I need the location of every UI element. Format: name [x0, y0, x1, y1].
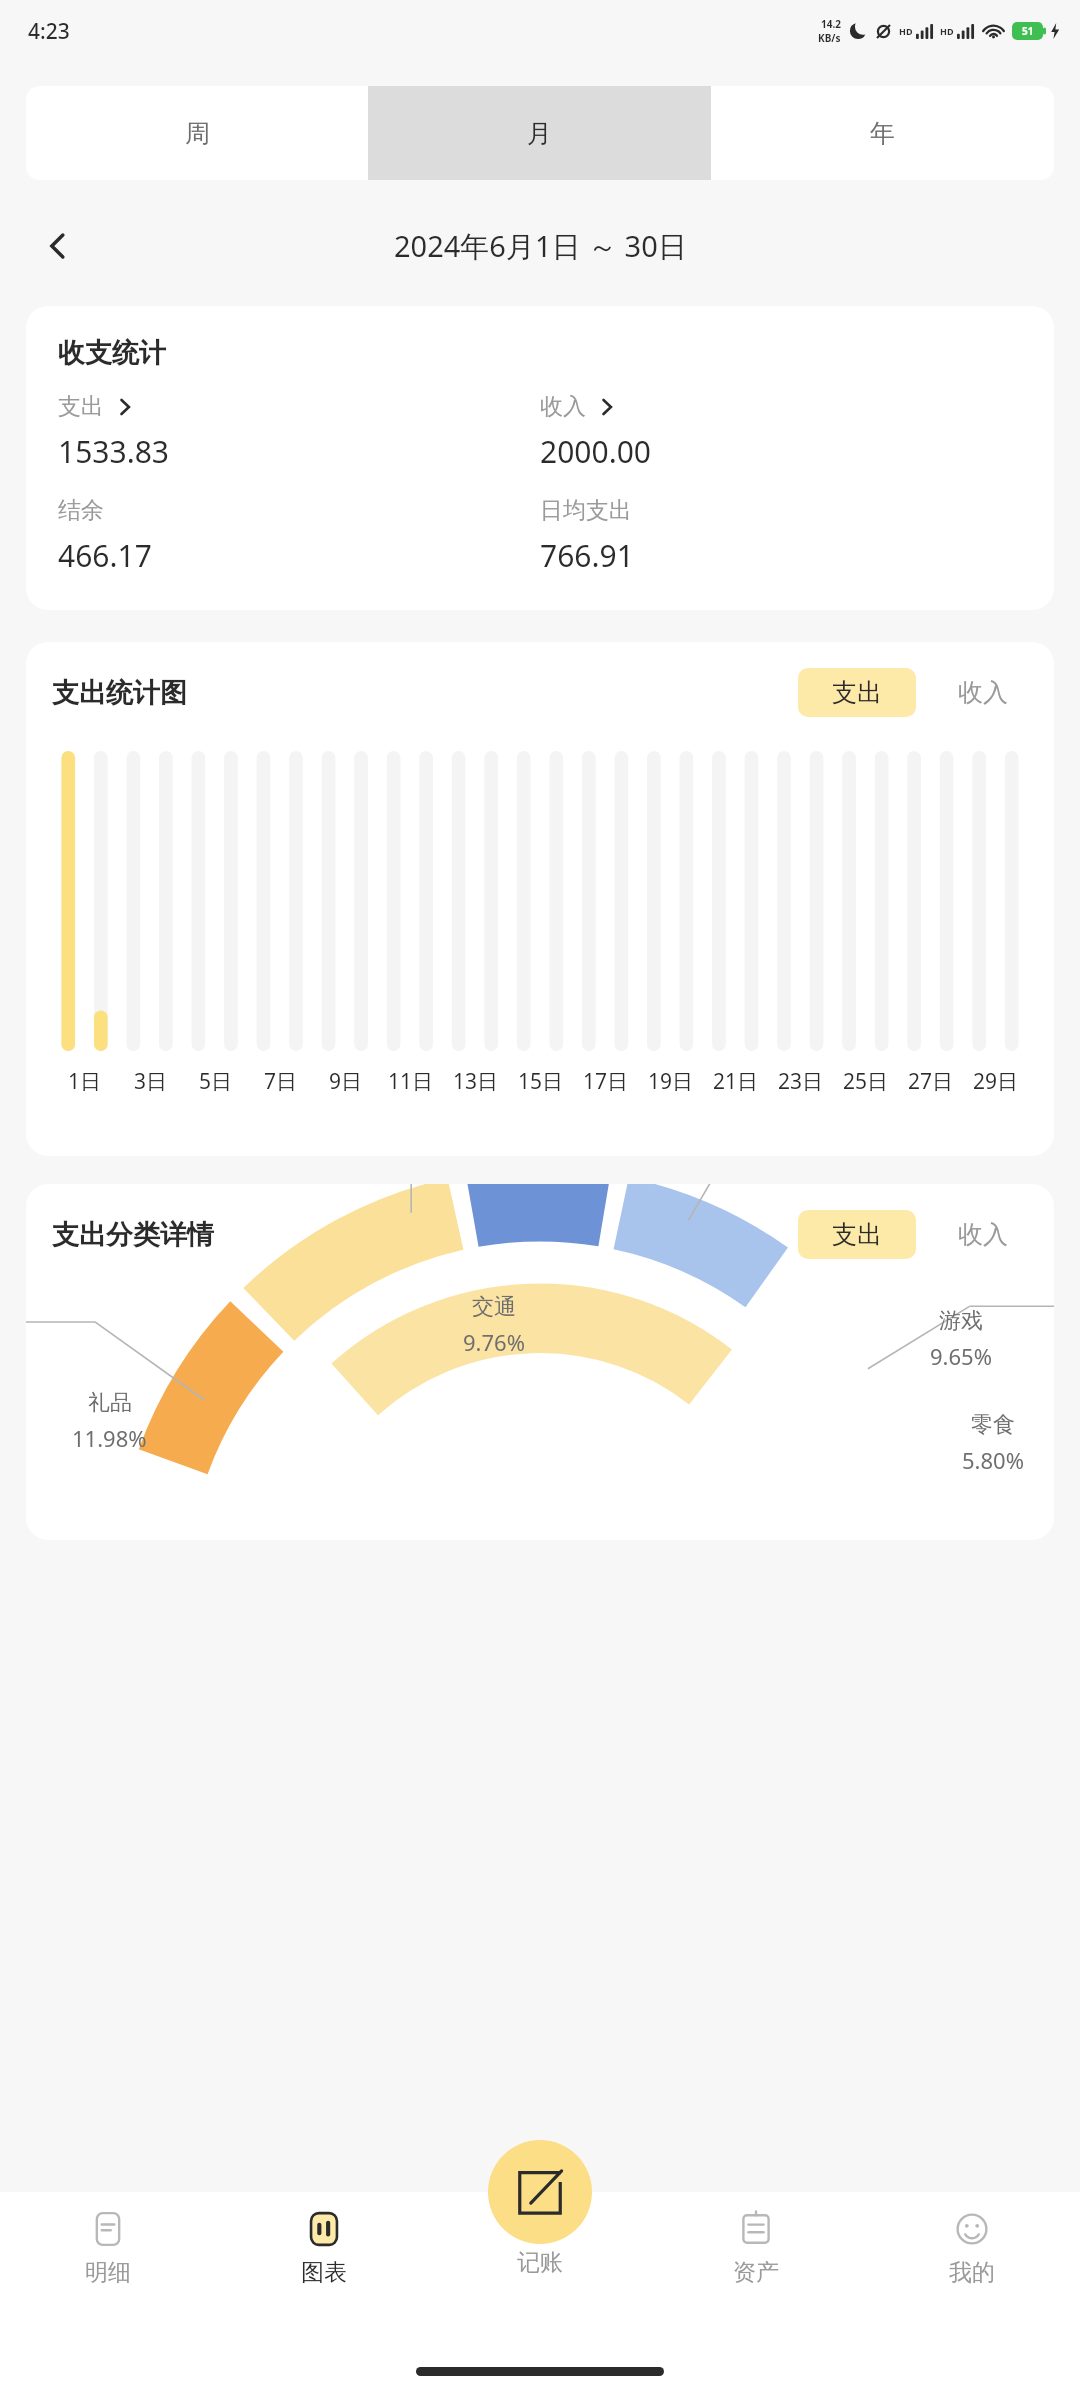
staticText: 收入	[958, 677, 1008, 708]
staticText: 29日	[973, 1067, 1019, 1096]
staticText: 支出	[832, 1219, 882, 1250]
staticText: 51	[1022, 24, 1034, 38]
button[interactable]: 年	[711, 86, 1054, 180]
button[interactable]: 支出	[58, 392, 540, 472]
button[interactable]: 明细	[0, 2192, 216, 2342]
button[interactable]: 我的	[864, 2192, 1080, 2342]
staticText: KB/s	[818, 31, 841, 45]
staticText: 2000.00	[540, 431, 651, 472]
staticText: 零食	[971, 1411, 1015, 1439]
staticText: 9日	[329, 1067, 363, 1096]
staticText: 月	[527, 118, 552, 149]
staticText: 收入	[958, 1219, 1008, 1250]
staticText: 1日	[68, 1067, 102, 1096]
staticText: 记账	[517, 2248, 563, 2277]
staticText: HD	[899, 25, 913, 37]
staticText: 周	[185, 118, 210, 149]
staticText: 7日	[264, 1067, 298, 1096]
staticText: 4:23	[28, 17, 70, 46]
staticText: 27日	[908, 1067, 954, 1096]
staticText: 我的	[949, 2258, 995, 2287]
staticText: 收入	[540, 392, 586, 421]
staticText: HD	[940, 25, 954, 37]
button[interactable]: 收入	[540, 392, 1022, 472]
staticText: 支出分类详情	[52, 1218, 214, 1252]
staticText: 5.80%	[962, 1445, 1024, 1475]
staticText: 资产	[733, 2258, 779, 2287]
staticText: 15日	[518, 1067, 564, 1096]
button[interactable]: 月	[368, 86, 711, 180]
button[interactable]: 结余	[58, 496, 540, 576]
staticText: 结余	[58, 496, 104, 525]
staticText: 466.17	[58, 535, 152, 576]
staticText: 支出	[58, 392, 104, 421]
button[interactable]: Back	[30, 218, 86, 274]
staticText: 礼品	[88, 1389, 132, 1417]
button[interactable]: 支出	[798, 1210, 916, 1259]
staticText: 交通	[472, 1293, 516, 1321]
button[interactable]: 收入	[942, 668, 1024, 717]
staticText: 图表	[301, 2258, 347, 2287]
staticText: 11日	[388, 1067, 434, 1096]
staticText: 游戏	[939, 1307, 983, 1335]
staticText: 2024年6月1日 ～ 30日	[394, 226, 687, 266]
staticText: 3日	[134, 1067, 168, 1096]
button[interactable]: 支出	[798, 668, 916, 717]
staticText: 23日	[778, 1067, 824, 1096]
button[interactable]: 记账	[488, 2140, 592, 2244]
staticText: 25日	[843, 1067, 889, 1096]
staticText: 9.76%	[463, 1327, 525, 1357]
staticText: 17日	[583, 1067, 629, 1096]
button[interactable]: 图表	[216, 2192, 432, 2342]
button[interactable]: 记账	[432, 2192, 648, 2277]
staticText: 支出	[832, 677, 882, 708]
staticText: 11.98%	[72, 1423, 147, 1453]
staticText: 13日	[453, 1067, 499, 1096]
button[interactable]: 周	[26, 86, 368, 180]
button[interactable]: 收入	[942, 1210, 1024, 1259]
staticText: 收支统计	[58, 336, 166, 370]
staticText: 9.65%	[930, 1341, 992, 1371]
button[interactable]: 资产	[648, 2192, 864, 2342]
staticText: 14.2	[821, 17, 841, 31]
staticText: 日均支出	[540, 496, 632, 525]
staticText: 支出统计图	[52, 676, 187, 710]
staticText: 明细	[85, 2258, 131, 2287]
staticText: 年	[870, 118, 895, 149]
staticText: 1533.83	[58, 431, 169, 472]
staticText: 21日	[713, 1067, 759, 1096]
button[interactable]: 日均支出	[540, 496, 1022, 576]
staticText: 19日	[648, 1067, 694, 1096]
staticText: 5日	[199, 1067, 233, 1096]
staticText: 766.91	[540, 535, 634, 576]
